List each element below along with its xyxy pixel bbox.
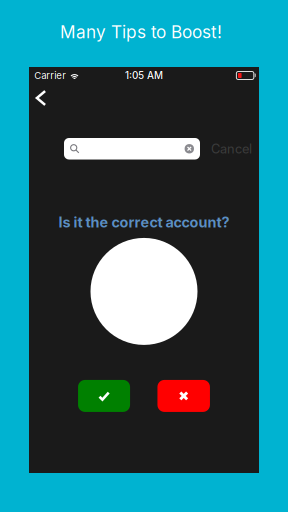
staticText: Cancel: [211, 141, 252, 156]
staticText: Is it the correct account?: [58, 213, 229, 231]
button[interactable]: Confirm account: [78, 380, 130, 412]
staticText: 1:05 AM: [125, 69, 163, 81]
button[interactable]: Cancel: [200, 138, 252, 159]
button[interactable]: Back: [29, 83, 53, 113]
staticText: Many Tips to Boost!: [60, 21, 222, 42]
button[interactable]: Reject account: [157, 380, 210, 412]
staticText: Carrier: [34, 70, 66, 81]
